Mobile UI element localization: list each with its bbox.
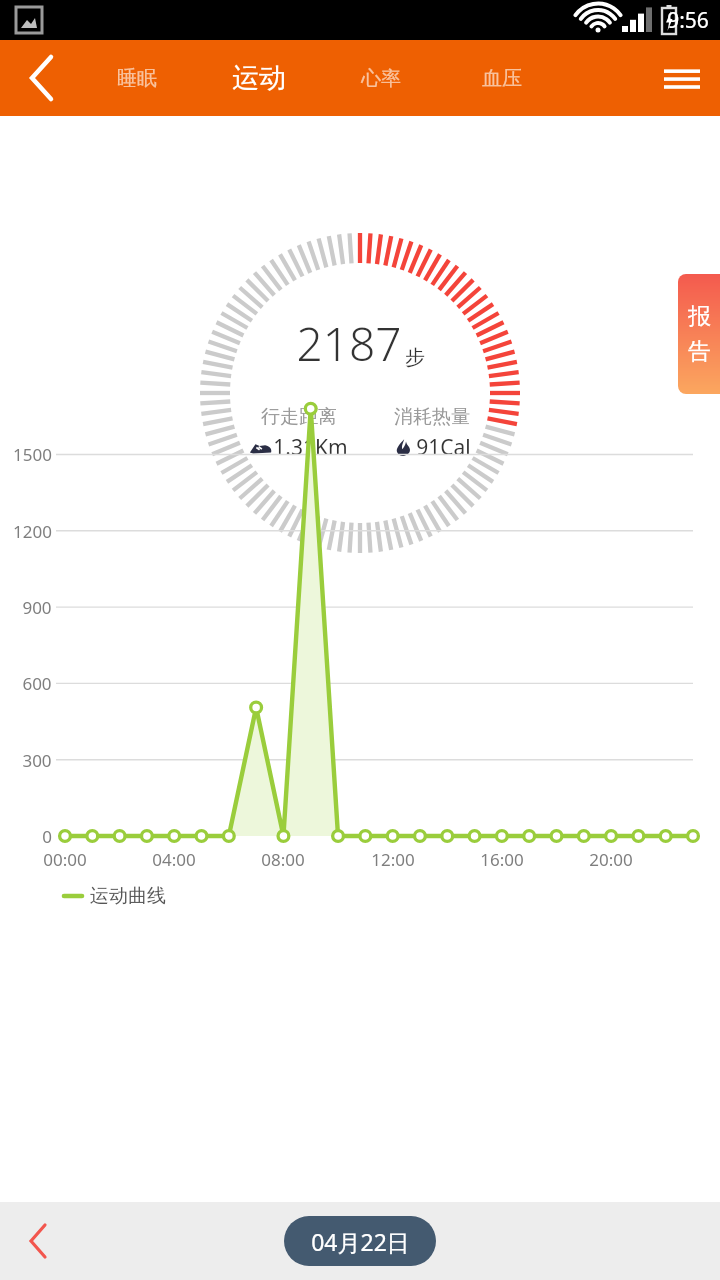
staticText: 9:56 [667,6,709,35]
staticText: 16:00 [480,848,524,871]
staticText: 300 [22,749,52,772]
staticText: 心率 [361,66,401,91]
staticText: 血压 [482,66,522,91]
staticText: 04月22日 [311,1226,410,1257]
staticText: 报 [688,302,711,331]
staticText: 行走距离 [261,405,337,429]
staticText: 91Cal [416,433,471,462]
button[interactable]: 报 [678,274,720,394]
button[interactable]: 心率 [333,40,429,116]
staticText: 消耗热量 [394,405,470,429]
button[interactable]: 运动 [211,40,307,116]
staticText: 运动 [232,61,286,95]
staticText: 00:00 [43,848,87,871]
staticText: 告 [688,337,711,366]
staticText: 运动曲线 [90,884,166,908]
button[interactable]: Back [0,40,76,116]
button[interactable]: 04月22日 [284,1216,436,1266]
staticText: 20:00 [589,848,633,871]
staticText: 900 [22,596,52,619]
button[interactable]: Menu [644,40,720,116]
staticText: 2187 [296,312,402,375]
staticText: 步 [405,345,425,370]
staticText: 1200 [13,520,52,543]
button[interactable]: 睡眠 [89,40,185,116]
button[interactable]: 血压 [454,40,550,116]
staticText: 0 [42,825,52,848]
staticText: 04:00 [152,848,196,871]
staticText: 1.31Km [273,433,348,462]
staticText: 08:00 [261,848,305,871]
staticText: 睡眠 [117,66,157,91]
staticText: 600 [22,672,52,695]
button[interactable]: Previous day [0,1206,70,1276]
staticText: 12:00 [371,848,415,871]
staticText: 1500 [13,443,52,466]
